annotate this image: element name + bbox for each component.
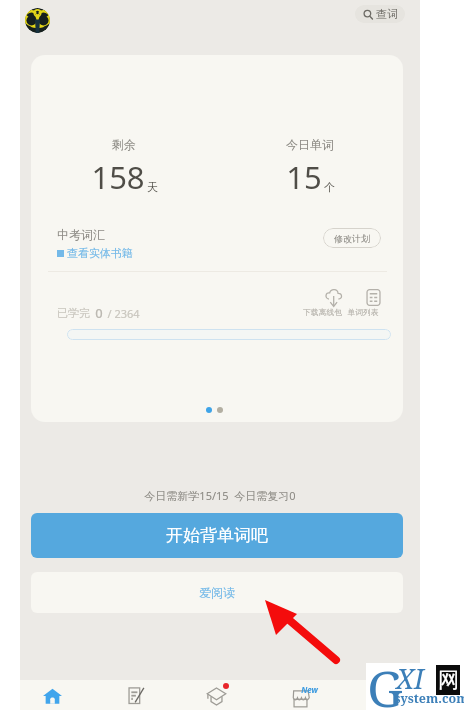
- button[interactable]: 爱阅读: [31, 572, 403, 613]
- staticText: 中考词汇: [57, 227, 105, 242]
- staticText: XI: [396, 660, 424, 697]
- button[interactable]: 修改计划: [323, 228, 381, 248]
- button[interactable]: 查词: [355, 5, 405, 23]
- button[interactable]: Courses: [176, 680, 259, 710]
- staticText: 单词列表: [347, 307, 379, 317]
- staticText: system.com: [394, 690, 464, 707]
- staticText: 158: [91, 156, 145, 198]
- staticText: 个: [324, 180, 335, 194]
- staticText: 修改计划: [334, 233, 370, 244]
- staticText: 天: [147, 180, 158, 194]
- staticText: 15: [286, 156, 322, 198]
- button[interactable]: Home: [11, 680, 94, 710]
- staticText: / 2364: [107, 306, 140, 321]
- staticText: 0: [95, 304, 103, 322]
- button[interactable]: Profile: [25, 8, 50, 33]
- staticText: G: [367, 654, 403, 710]
- staticText: 今日单词: [286, 137, 334, 152]
- staticText: 爱阅读: [199, 585, 235, 600]
- button[interactable]: Mine: [343, 680, 411, 710]
- button[interactable]: 开始背单词吧: [31, 513, 403, 558]
- staticText: 下载离线包: [303, 307, 342, 317]
- staticText: 开始背单词吧: [166, 525, 268, 546]
- staticText: 查看实体书籍: [67, 246, 133, 260]
- staticText: 查词: [376, 7, 398, 21]
- staticText: 剩余: [112, 137, 136, 152]
- staticText: 网: [438, 667, 459, 693]
- staticText: 已学完: [57, 306, 90, 320]
- staticText: New: [301, 684, 318, 695]
- button[interactable]: 查看实体书籍: [57, 246, 133, 260]
- button[interactable]: Notes: [94, 680, 176, 710]
- button[interactable]: [365, 288, 382, 305]
- staticText: 今日需新学15/15 今日需复习0: [144, 488, 296, 503]
- button[interactable]: Store: [259, 680, 343, 710]
- button[interactable]: [324, 288, 343, 307]
